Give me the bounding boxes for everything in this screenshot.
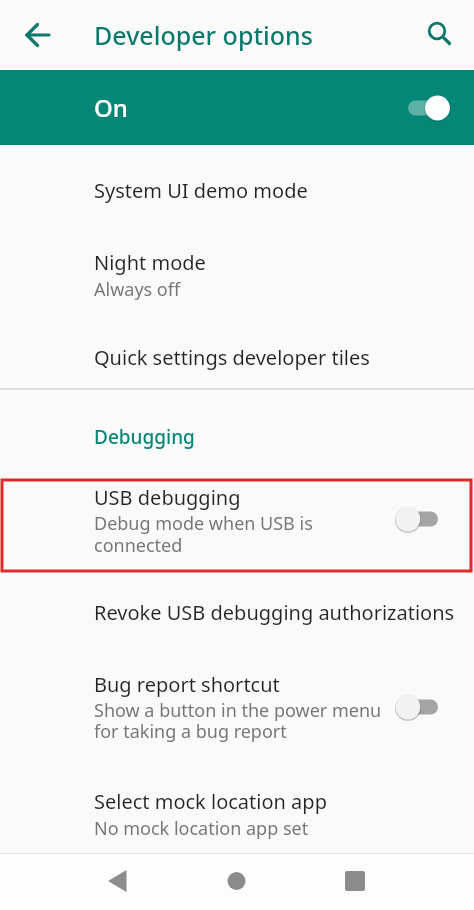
staticText: Revoke USB debugging authorizations (94, 599, 455, 626)
staticText: No mock location app set (94, 816, 309, 841)
button[interactable]: System UI demo mode (94, 145, 308, 235)
button[interactable]: Night mode (94, 240, 206, 284)
button[interactable]: USB debugging (94, 475, 241, 519)
staticText: USB debugging (94, 484, 241, 511)
staticText: Bug report shortcut (94, 671, 280, 698)
staticText: System UI demo mode (94, 177, 308, 204)
staticText: On (94, 91, 128, 124)
staticText: Debugging (94, 424, 195, 450)
staticText: Quick settings developer tiles (94, 344, 370, 371)
staticText: Select mock location app (94, 788, 327, 815)
button[interactable] (18, 16, 56, 54)
button[interactable] (333, 860, 377, 904)
button[interactable] (406, 94, 452, 122)
button[interactable]: No mock location app set (94, 808, 309, 848)
button[interactable] (422, 16, 460, 54)
button[interactable] (394, 505, 440, 533)
button[interactable]: Show a button in the power menu for taki… (94, 691, 382, 751)
button[interactable]: Quick settings developer tiles (94, 312, 370, 402)
staticText: Show a button in the power menu for taki… (94, 698, 382, 744)
button[interactable]: Select mock location app (94, 779, 327, 823)
button[interactable]: Debugging (94, 417, 195, 457)
staticText: Developer options (94, 18, 313, 52)
button[interactable] (215, 860, 259, 904)
button[interactable]: Developer options (94, 13, 313, 57)
button[interactable]: Bug report shortcut (94, 662, 280, 706)
button[interactable]: Revoke USB debugging authorizations (94, 567, 455, 657)
button[interactable]: Debug mode when USB is connected (94, 504, 313, 564)
staticText: Debug mode when USB is connected (94, 511, 313, 558)
staticText: Always off (94, 277, 181, 302)
button[interactable]: Always off (94, 269, 181, 309)
button[interactable]: On (0, 70, 474, 145)
button[interactable] (98, 860, 142, 904)
staticText: Night mode (94, 249, 206, 276)
button[interactable] (394, 693, 440, 721)
